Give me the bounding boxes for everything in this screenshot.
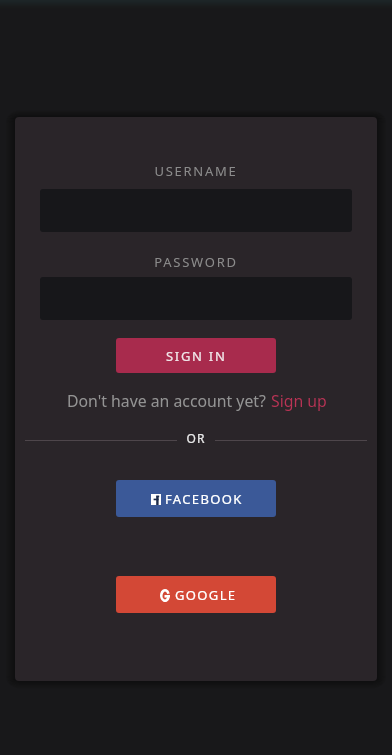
button[interactable]: SIGN IN	[116, 338, 276, 373]
staticText: USERNAME	[15, 162, 377, 180]
button[interactable]: Sign up	[271, 390, 327, 412]
staticText: Sign up	[271, 390, 327, 412]
staticText: OR	[15, 430, 377, 446]
button[interactable]: GOOGLE	[116, 576, 276, 613]
staticText: Don't have an account yet?	[67, 390, 271, 412]
staticText: PASSWORD	[15, 253, 377, 271]
staticText: GOOGLE	[175, 586, 237, 604]
staticText: SIGN IN	[166, 347, 227, 365]
staticText: FACEBOOK	[165, 490, 243, 508]
button[interactable]: FACEBOOK	[116, 480, 276, 517]
